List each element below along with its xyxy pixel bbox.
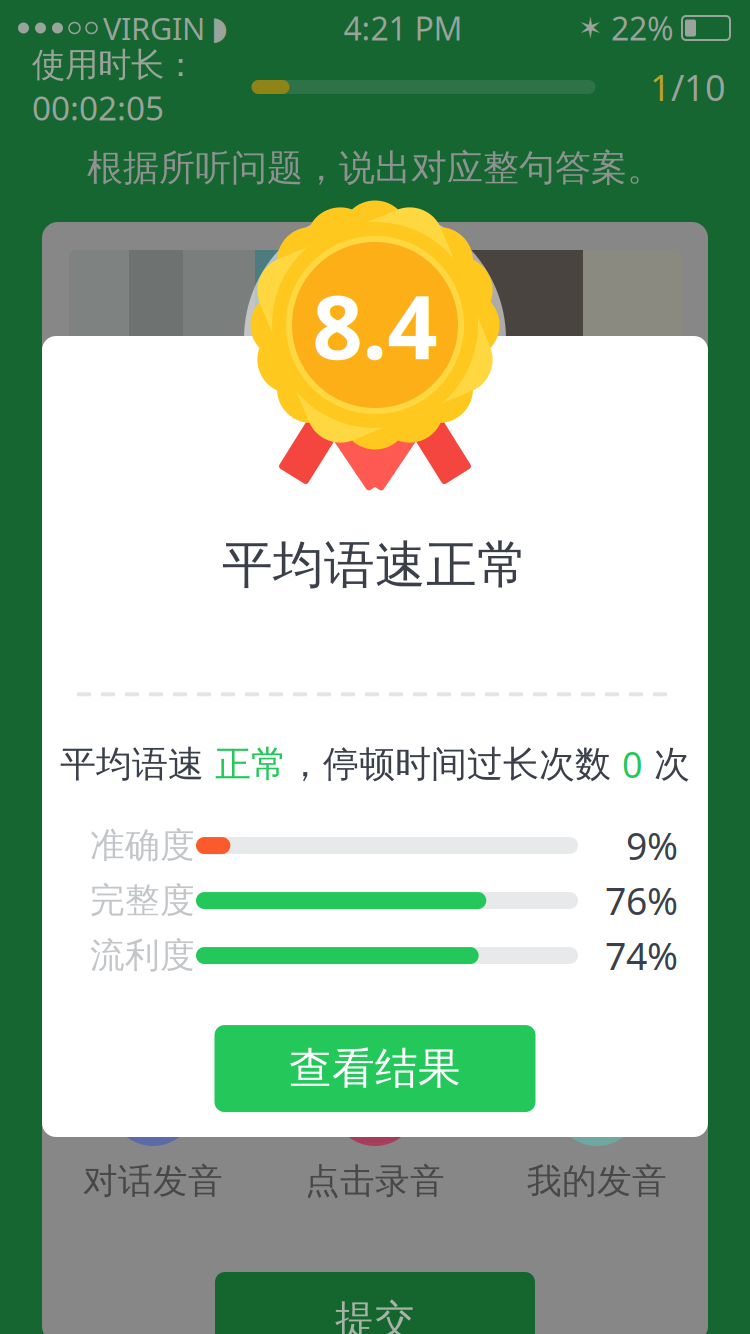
staticText: 次 — [643, 742, 690, 786]
staticText: ◗ — [211, 10, 228, 46]
staticText: 查看结果 — [289, 1042, 461, 1095]
staticText: VIRGIN — [103, 8, 205, 48]
staticText: 0 — [622, 740, 643, 788]
staticText: 对话发音 — [83, 1160, 223, 1203]
staticText: 提交 — [335, 1295, 415, 1334]
staticText: 4:21 PM — [343, 7, 462, 49]
staticText: ，停顿时间过长次数 — [287, 742, 622, 786]
staticText: 我的发音 — [527, 1160, 667, 1203]
staticText: 准确度 — [90, 824, 195, 867]
staticText: 8.4 — [312, 267, 437, 383]
staticText: 平均语速正常 — [222, 534, 528, 596]
staticText: 平均语速 — [60, 742, 215, 786]
staticText: ✶ — [578, 11, 603, 45]
staticText: 22% — [611, 7, 674, 49]
staticText: 1 — [650, 63, 671, 111]
button[interactable]: 查看结果 — [214, 1025, 535, 1112]
staticText: 根据所听问题，说出对应整句答案。 — [87, 146, 663, 190]
staticText: 9% — [626, 821, 678, 870]
staticText: 完整度 — [90, 879, 195, 922]
staticText: 正常 — [215, 742, 287, 786]
staticText: 使用时长：00:02:05 — [32, 44, 197, 130]
staticText: 点击录音 — [305, 1160, 445, 1203]
staticText: /10 — [671, 63, 726, 111]
staticText: 74% — [605, 931, 678, 980]
staticText: 流利度 — [90, 934, 195, 977]
staticText: 76% — [605, 876, 678, 925]
